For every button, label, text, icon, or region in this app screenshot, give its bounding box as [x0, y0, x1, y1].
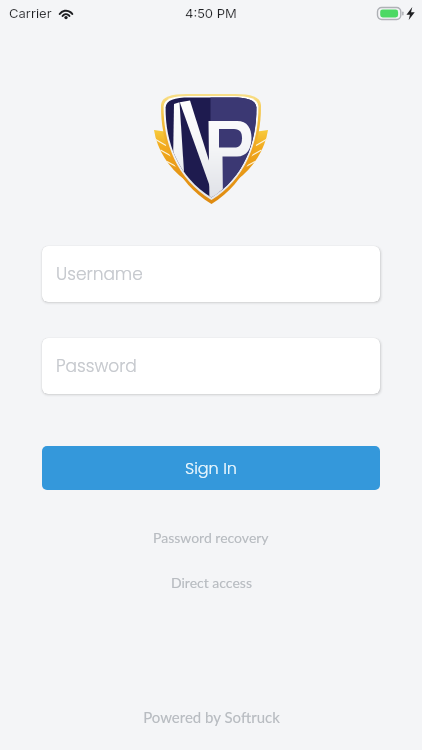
button[interactable]: Password recovery — [0, 526, 422, 548]
staticText: Password — [56, 354, 137, 378]
staticText: Password recovery — [153, 529, 269, 546]
button[interactable]: Direct access — [0, 571, 422, 593]
staticText: 4:50 PM — [185, 5, 237, 21]
button[interactable]: Username — [42, 246, 380, 302]
button[interactable]: Sign In — [42, 446, 380, 490]
staticText: Carrier — [9, 5, 52, 21]
staticText: Powered by Softruck — [143, 708, 280, 726]
staticText: Username — [56, 262, 143, 286]
button[interactable]: Password — [42, 338, 380, 394]
staticText: Sign In — [185, 457, 237, 479]
staticText: Direct access — [171, 574, 252, 591]
